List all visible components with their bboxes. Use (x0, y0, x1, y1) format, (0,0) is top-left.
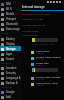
button[interactable]: Apps (Cache, Files) (21, 81, 64, 87)
staticText: 0.80 GB (36, 64, 44, 67)
button[interactable]: Display (0, 41, 21, 46)
staticText: Location (6, 66, 17, 70)
staticText: Total space used by apps (22, 12, 50, 15)
staticText: ACCOUNTS (1, 86, 12, 89)
button[interactable]: Google (0, 89, 21, 94)
staticText: Display (6, 42, 15, 46)
button[interactable]: Media files (21, 61, 64, 67)
staticText: 12.44 GB free of 32 GB (32, 43, 55, 46)
staticText: PERSONAL (1, 62, 12, 65)
button[interactable]: SIM networking (0, 1, 21, 6)
button[interactable]: Location (0, 65, 21, 70)
staticText: Google (6, 90, 15, 94)
staticText: 2.10 GB (36, 84, 44, 87)
staticText: Storage usage (22, 29, 39, 32)
button[interactable]: Storage (0, 46, 21, 51)
button[interactable]: Hotspot (0, 16, 21, 21)
button[interactable]: Mobile Tower Folders (21, 55, 64, 61)
staticText: Apps (6, 52, 13, 56)
staticText: 1.10 GB (36, 58, 44, 61)
staticText: 4.22 GB (36, 78, 44, 81)
staticText: Cached data 0.88 GB (22, 23, 46, 26)
staticText: Available 12.44 GB (22, 17, 43, 20)
button[interactable]: Language & input (0, 75, 21, 80)
button[interactable]: Backup & reset (0, 80, 21, 85)
button[interactable]: Apps (0, 51, 21, 56)
staticText: 2.34 GB (36, 52, 44, 55)
staticText: Media files (36, 61, 49, 64)
staticText: Battery (6, 37, 15, 41)
button[interactable]: Wi-Fi (0, 6, 21, 11)
button[interactable]: Security (0, 70, 21, 75)
staticText: Backup & reset (6, 81, 21, 85)
button[interactable]: Used Space (21, 49, 64, 55)
staticText: Mobile network (6, 12, 21, 16)
staticText: Wi-Fi (6, 7, 12, 11)
staticText: Used Space (36, 49, 50, 52)
button[interactable]: Battery (0, 36, 21, 41)
button[interactable]: Add account (0, 94, 21, 99)
staticText: Device storage (22, 34, 38, 37)
staticText: Language & input (6, 76, 21, 80)
staticText: Data usage (6, 27, 20, 31)
staticText: DEVICE (1, 32, 9, 35)
staticText: Hotspot (6, 17, 16, 21)
staticText: Add account (6, 95, 21, 99)
button[interactable]: Data usage (0, 26, 21, 31)
staticText: Storage (6, 47, 16, 51)
button[interactable]: System apps storage (21, 75, 64, 81)
staticText: Mobile Tower Folders (36, 55, 62, 58)
staticText: SIM networking (6, 2, 21, 6)
staticText: Apps (Cache, Files) (36, 81, 58, 84)
button[interactable]: Mobile network (0, 11, 21, 16)
staticText: Internal storage (22, 5, 45, 9)
staticText: Sound (6, 57, 14, 61)
staticText: System apps storage (36, 75, 61, 78)
button[interactable]: Bluetooth (0, 21, 21, 26)
staticText: Bluetooth (6, 22, 19, 26)
button[interactable]: Sound (0, 56, 21, 61)
staticText: Security (6, 71, 16, 75)
